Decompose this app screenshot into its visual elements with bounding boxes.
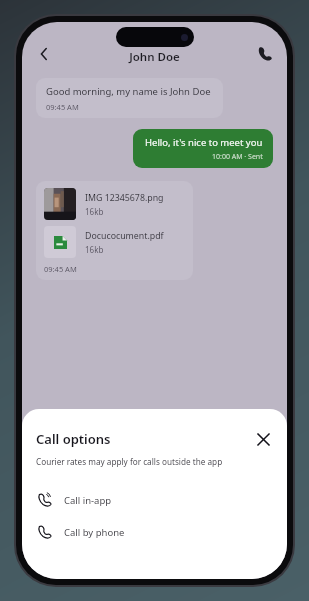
staticText: Hello, it's nice to meet you [145, 136, 263, 149]
staticText: Docucocument.pdf [85, 230, 164, 242]
staticText: Call by phone [64, 526, 125, 539]
staticText: 09:45 AM [46, 102, 79, 112]
staticText: 16kb [85, 244, 104, 255]
staticText: 10:00 AM · Sent [212, 152, 263, 162]
staticText: John Doe [129, 49, 180, 65]
button[interactable]: Good morning, my name is John Doe [36, 78, 223, 118]
staticText: 16kb [85, 206, 104, 217]
button[interactable]: Call [251, 40, 279, 68]
button[interactable]: Call by phone [22, 516, 287, 548]
staticText: Call in-app [64, 494, 112, 507]
staticText: Good morning, my name is John Doe [46, 85, 211, 98]
button[interactable]: IMG 12345678.png [36, 181, 193, 280]
staticText: Call options [36, 430, 251, 448]
staticText: IMG 12345678.png [85, 192, 164, 204]
button[interactable]: Call in-app [22, 484, 287, 516]
button[interactable]: Hello, it's nice to meet you [133, 129, 273, 168]
staticText: Courier rates may apply for calls outsid… [36, 456, 223, 467]
button[interactable]: Close [251, 427, 275, 451]
staticText: 09:45 AM [44, 264, 77, 274]
button[interactable]: Back [30, 40, 58, 68]
